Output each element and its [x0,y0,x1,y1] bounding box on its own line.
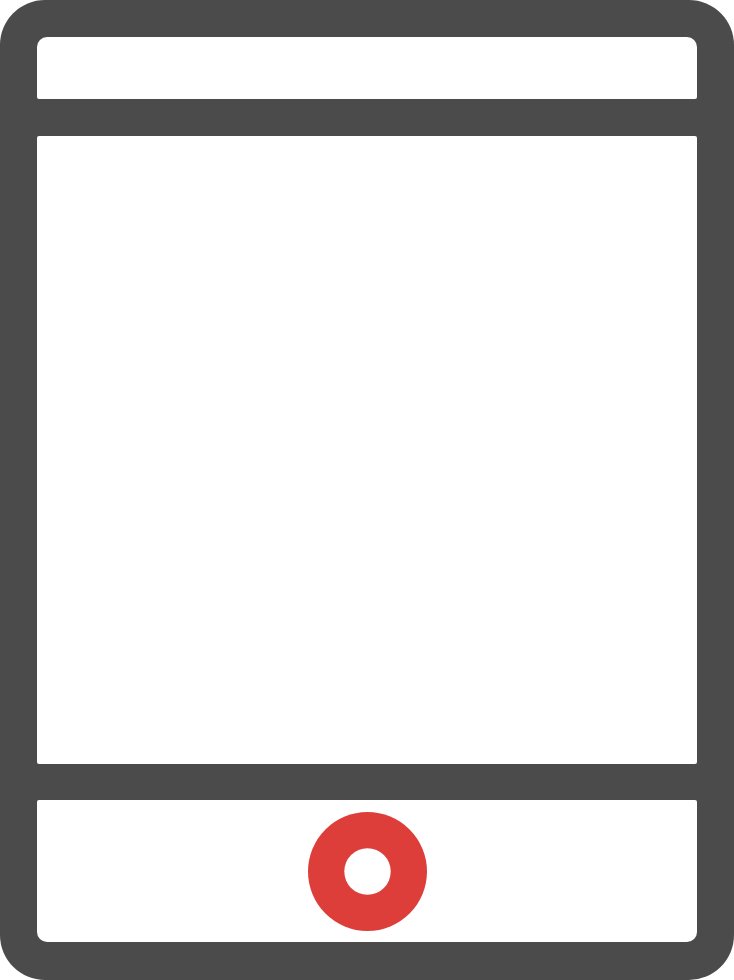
button[interactable]: Tablet device [0,0,734,980]
button[interactable]: Home button [308,812,427,931]
